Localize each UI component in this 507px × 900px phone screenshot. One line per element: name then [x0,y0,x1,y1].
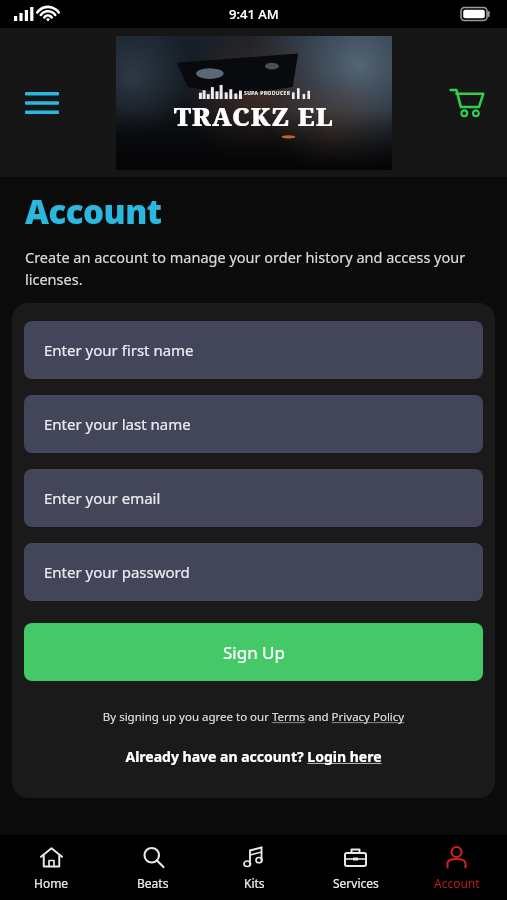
staticText: Account [25,189,162,234]
staticText: Create an account to manage your order h… [25,247,482,289]
staticText: 9:41 AM [229,5,279,23]
button[interactable]: Services [305,835,406,900]
staticText: Kits [244,875,265,891]
button[interactable]: Sign Up [24,623,483,681]
button[interactable]: Account [406,835,507,900]
button[interactable]: Enter your password [24,543,483,601]
staticText: Services [333,875,379,891]
staticText: Home [34,875,69,891]
button[interactable]: Already have an account? Login here [24,747,483,766]
staticText: SUPA PRODUCER [244,90,291,97]
staticText: Enter your last name [44,414,191,434]
button[interactable]: Enter your last name [24,395,483,453]
button[interactable]: By signing up you agree to our Terms and… [24,709,483,725]
staticText: Sign Up [223,641,285,664]
staticText: Beats [137,875,169,891]
button[interactable]: Enter your email [24,469,483,527]
staticText: Enter your first name [44,340,194,360]
staticText: Account [434,875,480,891]
staticText: TRACKZ EL [174,99,334,133]
staticText: Enter your email [44,488,161,508]
button[interactable]: Cart [441,77,493,129]
button[interactable]: Kits [204,835,305,900]
button[interactable]: Beats [102,835,204,900]
button[interactable]: Menu [16,77,68,129]
staticText: Enter your password [44,562,190,582]
button[interactable]: Enter your first name [24,321,483,379]
button[interactable]: Home [0,835,102,900]
